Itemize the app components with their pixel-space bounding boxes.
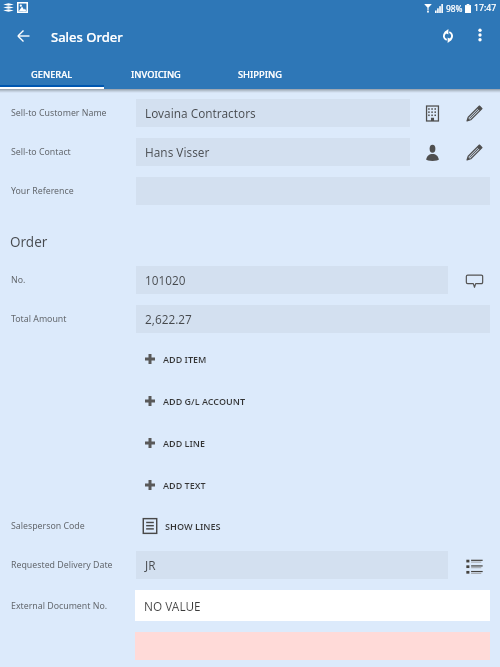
staticText: Hans Visser bbox=[145, 144, 210, 160]
staticText: ADD TEXT bbox=[163, 479, 206, 491]
button[interactable]: Edit customer name bbox=[457, 99, 491, 127]
button[interactable]: Edit contact bbox=[457, 138, 491, 166]
button[interactable]: More options bbox=[464, 19, 496, 51]
staticText: Requested Delivery Date bbox=[11, 559, 113, 571]
staticText: ADD ITEM bbox=[163, 353, 207, 365]
button[interactable]: ADD TEXT bbox=[145, 471, 490, 499]
staticText: Total Amount bbox=[11, 313, 67, 325]
button[interactable]: GENERAL bbox=[0, 61, 104, 89]
button[interactable]: SHOW LINES bbox=[142, 512, 221, 540]
button[interactable]: ADD ITEM bbox=[145, 345, 490, 373]
staticText: 98% bbox=[446, 3, 463, 14]
staticText: 17:47 bbox=[474, 2, 497, 14]
staticText: External Document No. bbox=[11, 600, 108, 612]
button[interactable]: Back bbox=[6, 19, 40, 53]
button[interactable]: 2,622.27 bbox=[136, 305, 490, 333]
button[interactable]: 101020 bbox=[136, 266, 448, 294]
staticText: Sales Order bbox=[51, 28, 123, 46]
button[interactable]: Hans Visser bbox=[136, 138, 410, 166]
button[interactable]: Select contact bbox=[415, 138, 449, 166]
button[interactable]: Refresh bbox=[430, 18, 466, 54]
button[interactable]: Comments bbox=[457, 266, 491, 294]
staticText: GENERAL bbox=[31, 68, 73, 81]
staticText: 101020 bbox=[145, 272, 186, 288]
staticText: JR bbox=[145, 557, 156, 573]
staticText: ADD G/L ACCOUNT bbox=[163, 395, 245, 407]
button[interactable]: INVOICING bbox=[104, 61, 208, 89]
staticText: SHOW LINES bbox=[165, 520, 221, 532]
staticText: Sell-to Contact bbox=[11, 146, 71, 158]
staticText: SHIPPING bbox=[238, 68, 282, 81]
button[interactable]: Lookup bbox=[457, 551, 491, 579]
staticText: 2,622.27 bbox=[145, 311, 192, 327]
staticText: Your Reference bbox=[11, 185, 74, 197]
staticText: Lovaina Contractors bbox=[145, 105, 256, 121]
staticText: NO VALUE bbox=[144, 598, 201, 614]
button[interactable]: ADD G/L ACCOUNT bbox=[145, 387, 490, 415]
button[interactable]: JR bbox=[136, 551, 448, 579]
staticText: INVOICING bbox=[131, 68, 181, 81]
staticText: Sell-to Customer Name bbox=[11, 107, 107, 119]
button[interactable]: ADD LINE bbox=[145, 429, 490, 457]
button[interactable]: NO VALUE bbox=[135, 590, 490, 621]
staticText: Order bbox=[10, 233, 48, 251]
staticText: Salesperson Code bbox=[11, 520, 85, 532]
button[interactable]: Lovaina Contractors bbox=[136, 99, 410, 127]
button[interactable]: Select customer bbox=[415, 99, 449, 127]
staticText: ADD LINE bbox=[163, 437, 205, 449]
staticText: No. bbox=[11, 274, 26, 286]
button[interactable]: SHIPPING bbox=[208, 61, 312, 89]
